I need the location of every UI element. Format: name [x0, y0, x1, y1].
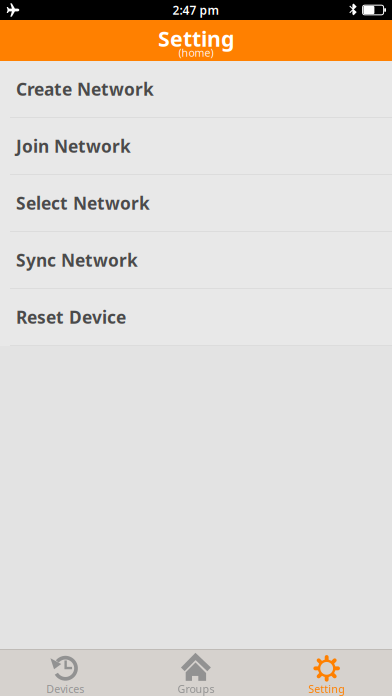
staticText: Sync Network — [16, 248, 138, 271]
button[interactable]: Devices — [0, 650, 131, 696]
button[interactable]: Setting — [261, 650, 392, 696]
staticText: Setting — [308, 682, 345, 696]
staticText: 2:47 pm — [172, 2, 219, 18]
staticText: Select Network — [16, 191, 150, 214]
button[interactable]: Select Network — [0, 175, 392, 232]
staticText: Devices — [46, 682, 84, 696]
staticText: Create Network — [16, 77, 154, 100]
staticText: Reset Device — [16, 305, 126, 328]
staticText: Groups — [177, 682, 214, 696]
button[interactable]: Create Network — [0, 61, 392, 118]
staticText: Join Network — [16, 134, 131, 157]
button[interactable]: Sync Network — [0, 232, 392, 289]
staticText: (home) — [178, 45, 213, 60]
button[interactable]: Reset Device — [0, 289, 392, 346]
button[interactable]: Groups — [131, 650, 261, 696]
button[interactable]: Join Network — [0, 118, 392, 175]
staticText: Setting — [158, 24, 234, 53]
